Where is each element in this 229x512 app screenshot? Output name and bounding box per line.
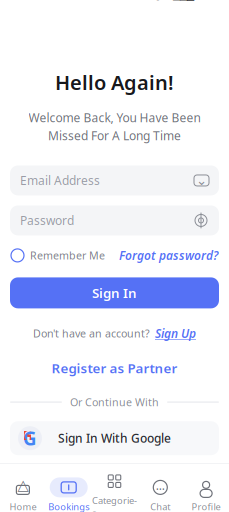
button[interactable]: ...: [137, 473, 183, 512]
staticText: Home: [9, 500, 36, 512]
button[interactable]: Register as Partner: [51, 359, 177, 377]
staticText: Chat: [150, 500, 170, 512]
staticText: ◐: [153, 0, 162, 1]
staticText: G: [20, 423, 34, 448]
staticText: Remember Me: [30, 248, 105, 262]
button[interactable]: △: [0, 473, 46, 512]
staticText: Sign In With Google: [58, 430, 171, 446]
staticText: ⌄: [196, 173, 207, 188]
staticText: Welcome Back, You Have Been: [28, 110, 200, 125]
staticText: Hello Again!: [55, 69, 174, 96]
staticText: Forgot password?: [119, 247, 218, 263]
staticText: Sign In: [92, 284, 137, 302]
button[interactable]: Bookings: [46, 473, 92, 512]
button[interactable]: Forgot password?: [119, 247, 218, 263]
staticText: Categories: [92, 494, 137, 512]
staticText: Password: [20, 212, 74, 228]
staticText: Register as Partner: [51, 359, 177, 377]
button[interactable]: G: [10, 421, 219, 455]
staticText: Don't have an account?: [33, 326, 150, 340]
staticText: ...: [156, 477, 165, 493]
button[interactable]: Profile: [183, 473, 229, 512]
staticText: Profile: [192, 500, 221, 512]
staticText: G: [23, 426, 37, 451]
button[interactable]: Sign In: [10, 277, 219, 308]
button[interactable]: Remember Me: [11, 248, 105, 262]
button[interactable]: Categories: [92, 467, 137, 512]
staticText: Email Address: [20, 172, 100, 188]
staticText: Missed For A Long Time: [48, 127, 181, 143]
staticText: △: [17, 477, 28, 493]
staticText: Or Continue With: [70, 395, 159, 409]
staticText: Bookings: [48, 500, 89, 512]
staticText: Sign Up: [155, 325, 196, 341]
button[interactable]: Sign Up: [155, 325, 196, 341]
